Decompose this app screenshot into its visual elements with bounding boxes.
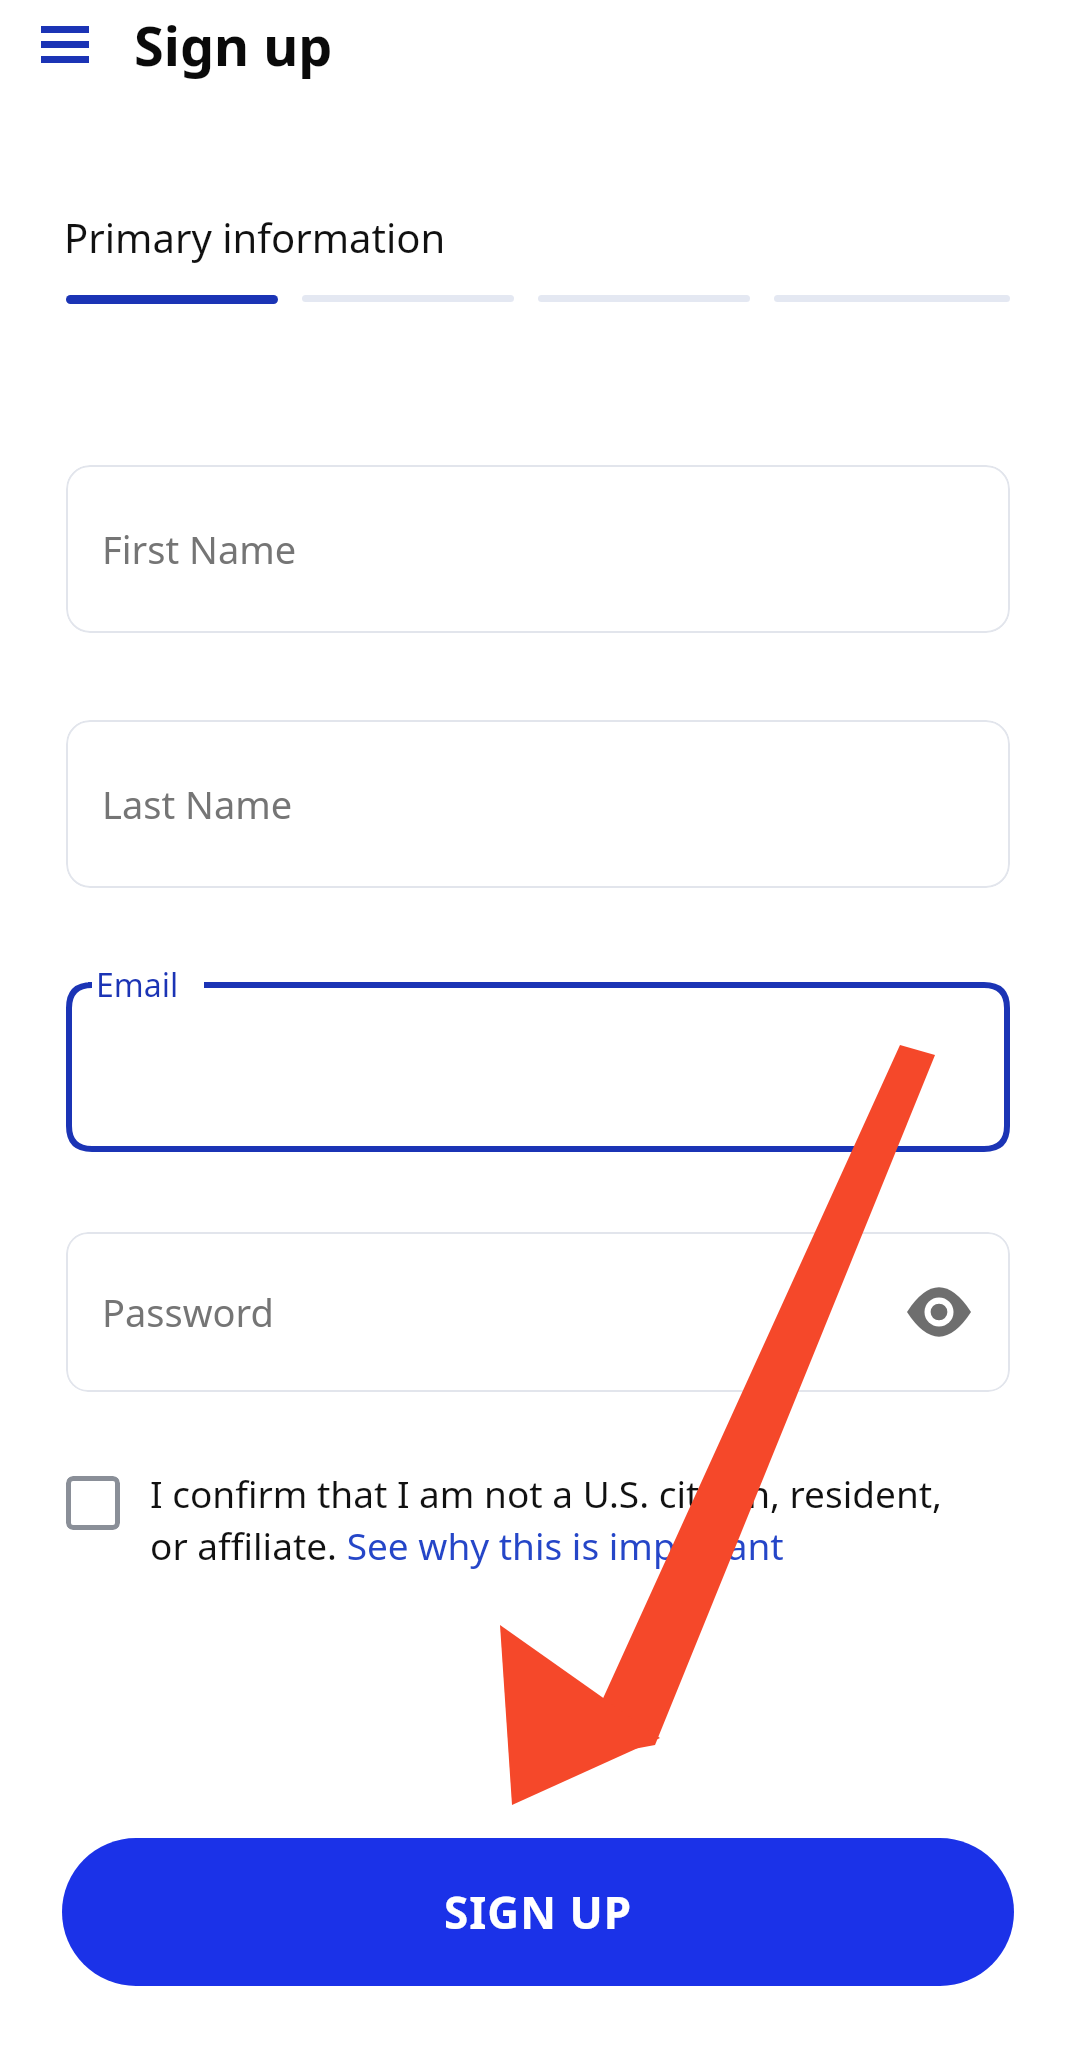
staticText: SIGN UP (444, 1882, 633, 1942)
button[interactable]: Open navigation menu (34, 14, 96, 76)
staticText: Password (102, 1286, 274, 1338)
staticText: Last Name (102, 778, 293, 830)
staticText: First Name (102, 523, 297, 575)
button[interactable]: First Name (66, 465, 1010, 633)
staticText: Sign up (134, 8, 333, 82)
button[interactable] (66, 295, 278, 304)
staticText: I confirm that I am not a U.S. citizen, … (150, 1468, 946, 1571)
staticText: Primary information (64, 210, 446, 264)
button[interactable]: Password (66, 1232, 1010, 1392)
button[interactable]: SIGN UP (62, 1838, 1014, 1986)
staticText: Email (96, 963, 179, 1007)
button[interactable]: Last Name (66, 720, 1010, 888)
button[interactable]: I confirm that I am not a U.S. citizen, … (66, 1468, 946, 1571)
button[interactable]: Email (66, 982, 1010, 1152)
button[interactable]: Show password (904, 1277, 974, 1347)
